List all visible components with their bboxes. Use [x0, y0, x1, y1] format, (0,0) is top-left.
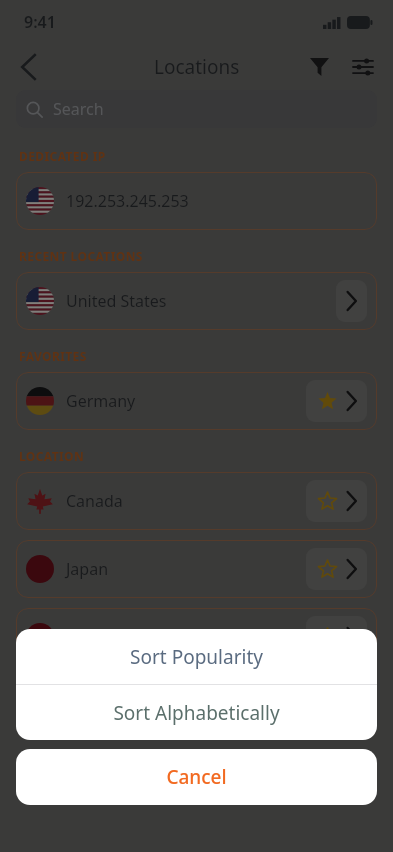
staticText: 192.253.245.253 — [66, 190, 367, 212]
button[interactable]: Favorite — [316, 490, 338, 512]
staticText: Sort Popularity — [130, 644, 263, 670]
staticText: DEDICATED IP — [19, 148, 106, 164]
button[interactable]: Germany — [16, 372, 377, 430]
staticText: Germany — [66, 390, 306, 412]
staticText: RECENT LOCATIONS — [19, 248, 143, 264]
button[interactable]: Search — [16, 90, 377, 128]
staticText: 9:41 — [24, 11, 56, 33]
staticText: Canada — [66, 490, 306, 512]
staticText: Search — [53, 98, 104, 120]
button[interactable]: 192.253.245.253 — [16, 172, 377, 230]
staticText: FAVORITES — [19, 348, 87, 364]
button[interactable]: Japan — [16, 540, 377, 598]
button[interactable]: Canada — [16, 472, 377, 530]
button[interactable]: Cancel — [16, 749, 377, 805]
staticText: Locations — [154, 54, 240, 80]
button[interactable]: Favorite — [316, 626, 338, 648]
staticText: Cancel — [166, 764, 227, 790]
button[interactable]: Settings — [341, 45, 385, 89]
button[interactable]: Sort Alphabetically — [16, 685, 377, 740]
staticText: Sort Alphabetically — [113, 700, 280, 726]
staticText: United States — [66, 290, 336, 312]
staticText: Japan — [66, 558, 306, 580]
staticText: Singapore — [66, 626, 306, 648]
button[interactable]: Filter — [297, 45, 341, 89]
button[interactable]: Favorite — [316, 558, 338, 580]
button[interactable]: United States — [16, 272, 377, 330]
button[interactable]: Singapore — [16, 608, 377, 666]
button[interactable]: Sort Popularity — [16, 629, 377, 684]
staticText: LOCATION — [19, 448, 85, 464]
button[interactable]: Back — [6, 45, 50, 89]
button[interactable]: Favorite — [316, 390, 338, 412]
